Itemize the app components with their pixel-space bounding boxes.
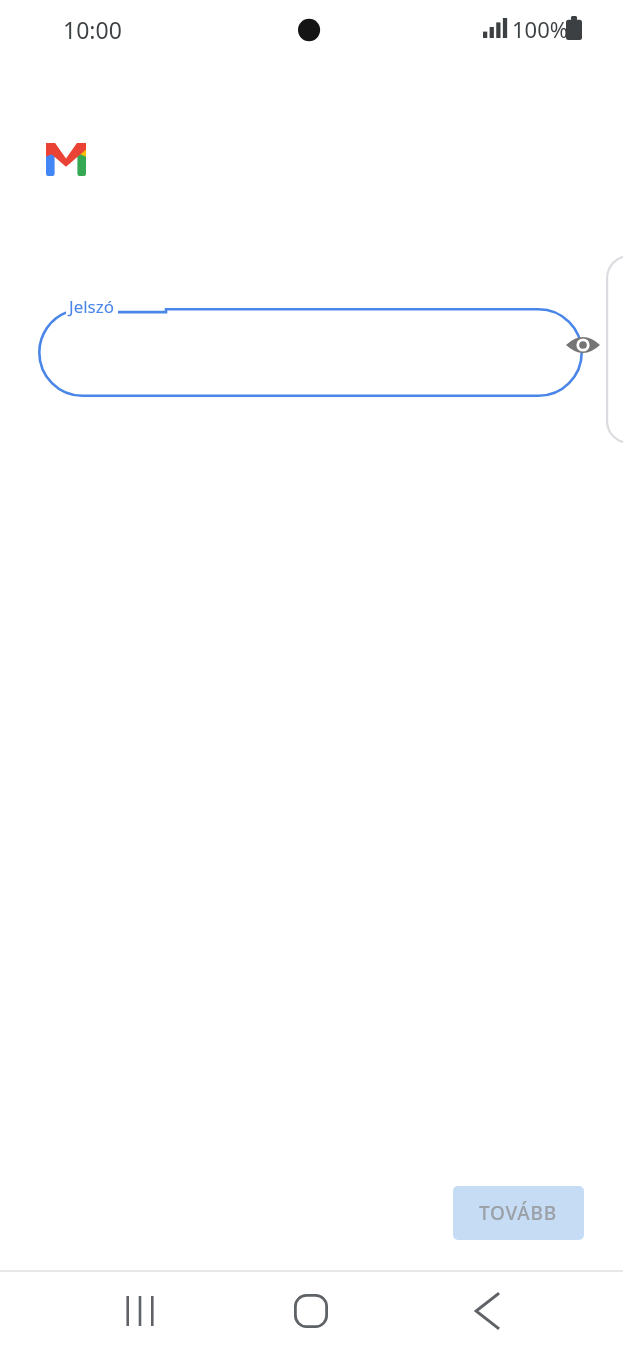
staticText: Jelszó xyxy=(69,295,115,318)
staticText: 100% xyxy=(512,14,569,44)
button[interactable]: Home xyxy=(261,1272,361,1349)
staticText: TOVÁBB xyxy=(479,1200,558,1226)
button[interactable]: Jelszó xyxy=(38,292,583,397)
button[interactable]: Recent apps xyxy=(90,1272,190,1349)
button[interactable]: TOVÁBB xyxy=(453,1186,584,1240)
staticText: 10:00 xyxy=(63,14,122,45)
button[interactable]: Password suggestion xyxy=(606,255,623,444)
button[interactable]: Back xyxy=(437,1272,537,1349)
button[interactable]: Show password xyxy=(551,313,615,377)
